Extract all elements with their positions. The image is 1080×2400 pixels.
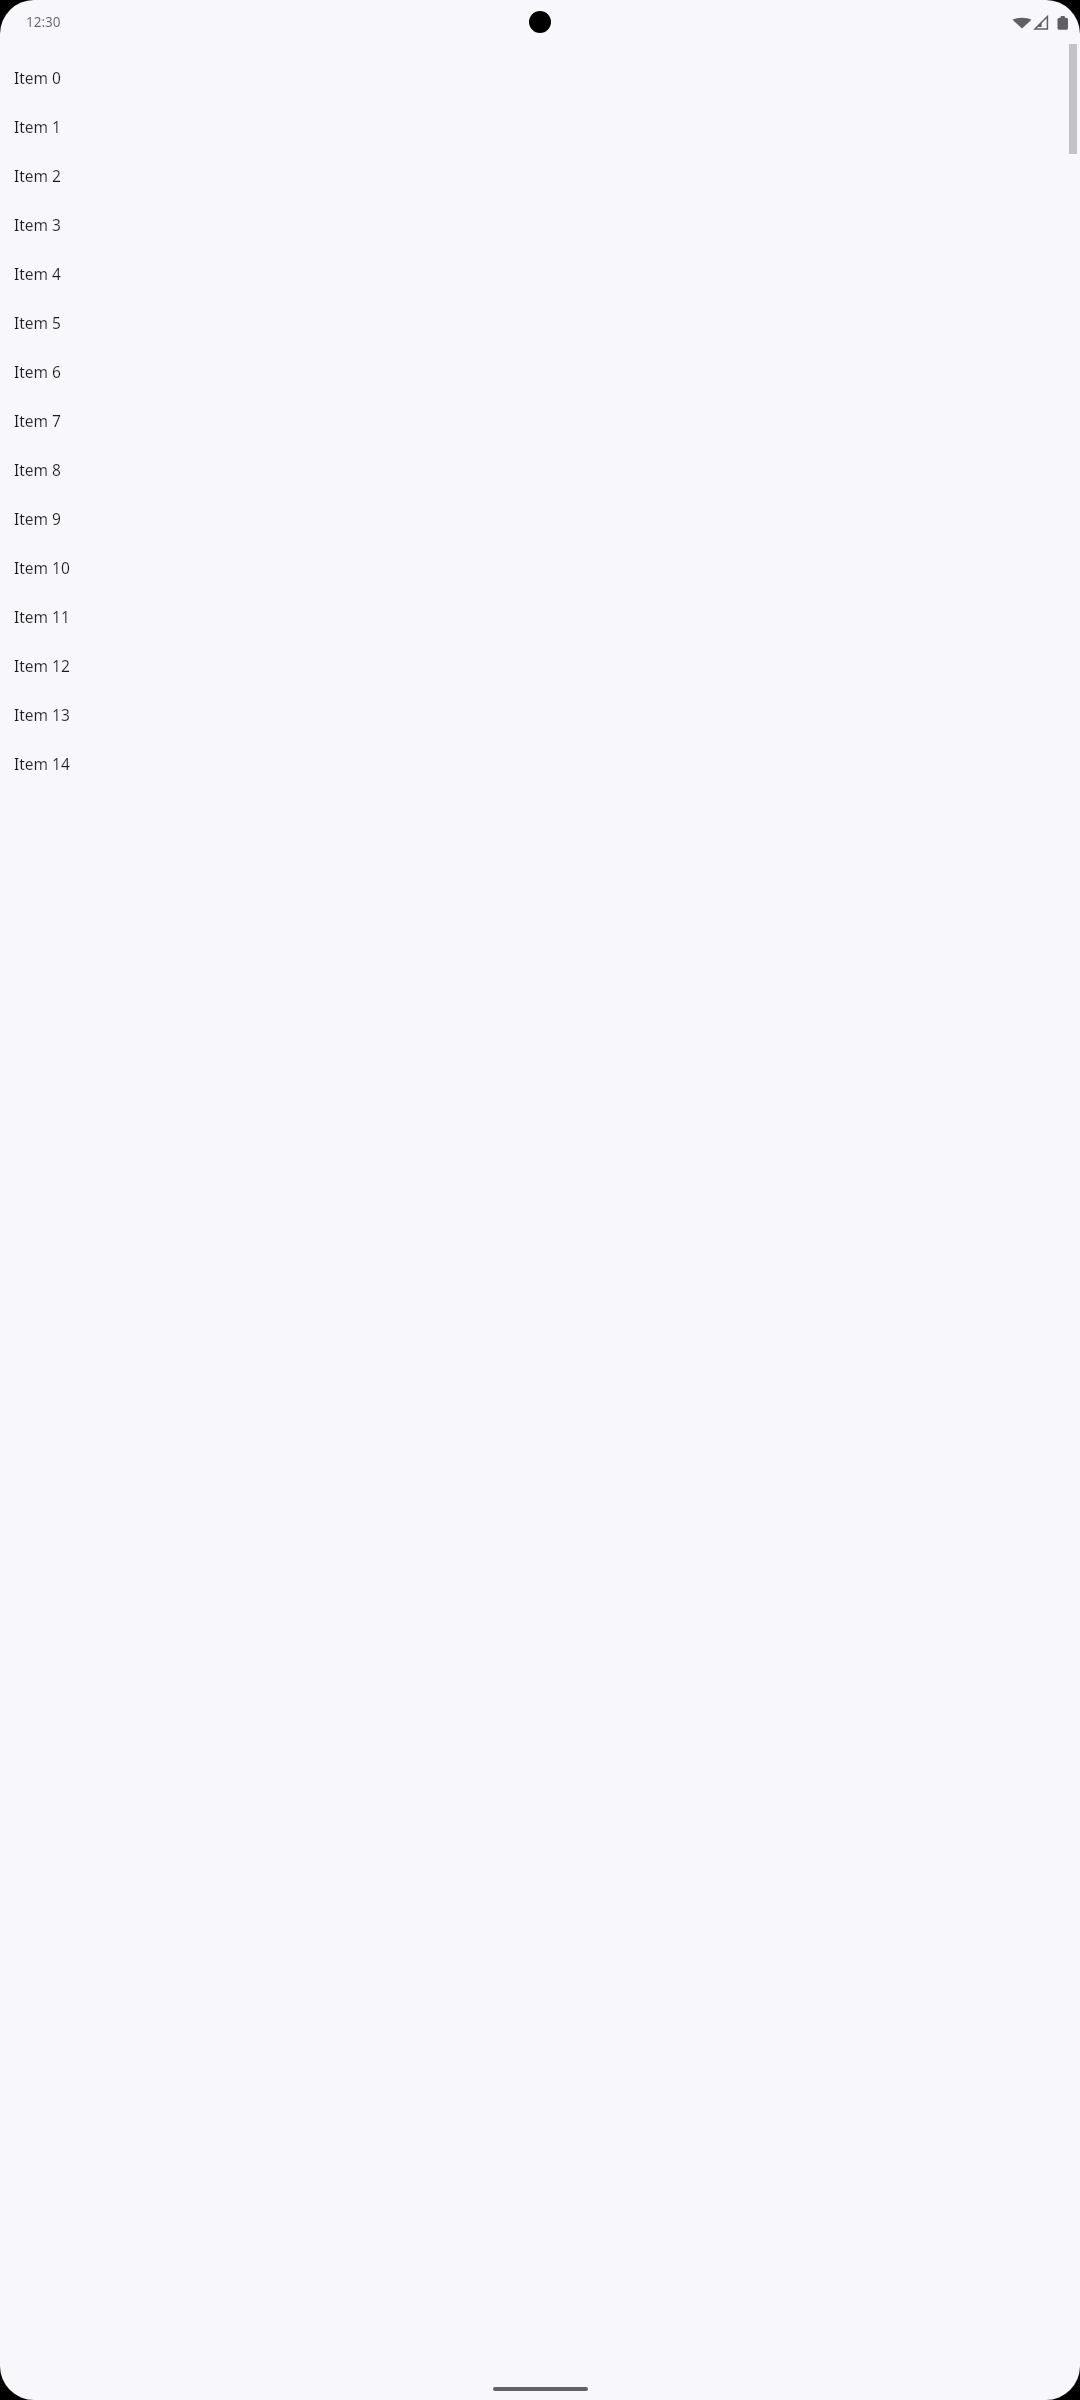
button[interactable]: Item 6: [0, 347, 1080, 396]
staticText: Item 10: [14, 557, 70, 578]
button[interactable]: Item 8: [0, 445, 1080, 494]
staticText: Item 11: [14, 606, 70, 627]
staticText: Item 8: [14, 459, 61, 480]
staticText: Item 4: [14, 263, 61, 284]
button[interactable]: Item 4: [0, 249, 1080, 298]
staticText: Item 5: [14, 312, 61, 333]
staticText: Item 2: [14, 165, 61, 186]
staticText: Item 12: [14, 655, 70, 676]
staticText: Item 1: [14, 116, 61, 137]
button[interactable]: Item 12: [0, 641, 1080, 690]
staticText: Item 7: [14, 410, 61, 431]
staticText: Item 13: [14, 704, 70, 725]
button[interactable]: Item 7: [0, 396, 1080, 445]
staticText: Item 3: [14, 214, 61, 235]
button[interactable]: Item 1: [0, 102, 1080, 151]
button[interactable]: Item 10: [0, 543, 1080, 592]
staticText: Item 14: [14, 753, 70, 774]
button[interactable]: Item 13: [0, 690, 1080, 739]
staticText: 12:30: [26, 13, 61, 31]
button[interactable]: Item 5: [0, 298, 1080, 347]
button[interactable]: Item 2: [0, 151, 1080, 200]
button[interactable]: Item 3: [0, 200, 1080, 249]
button[interactable]: Item 9: [0, 494, 1080, 543]
staticText: Item 6: [14, 361, 61, 382]
staticText: Item 9: [14, 508, 61, 529]
button[interactable]: Item 11: [0, 592, 1080, 641]
other: Home gesture bar: [493, 2387, 588, 2391]
button[interactable]: Item 0: [0, 53, 1080, 102]
button[interactable]: Item 14: [0, 739, 1080, 788]
staticText: Item 0: [14, 67, 61, 88]
